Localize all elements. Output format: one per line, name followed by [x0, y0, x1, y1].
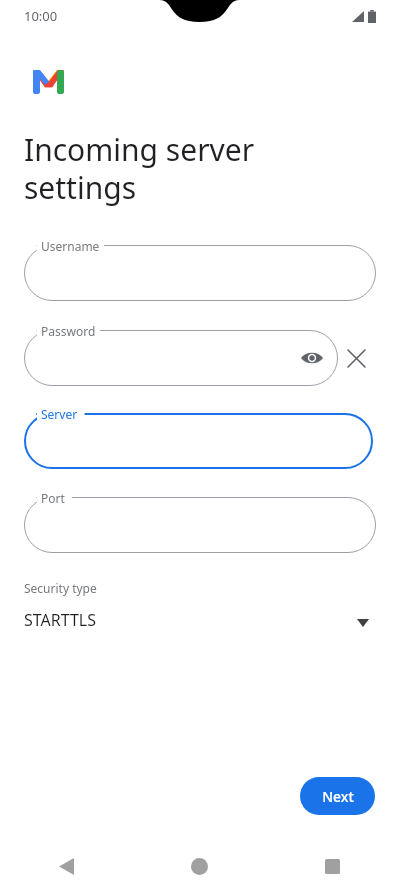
button[interactable]: Back: [0, 840, 133, 893]
staticText: Username: [41, 238, 100, 254]
staticText: Next: [322, 787, 354, 806]
staticText: Incoming server settings: [24, 129, 255, 208]
staticText: 10:00: [24, 7, 58, 25]
button[interactable]: Clear password: [338, 340, 374, 376]
button[interactable]: Home: [133, 840, 266, 893]
staticText: STARTTLS: [24, 609, 97, 631]
button[interactable]: Port: [24, 497, 376, 553]
button[interactable]: Server: [24, 413, 373, 469]
staticText: Security type: [24, 580, 97, 596]
button[interactable]: Security type: [0, 580, 399, 631]
staticText: Password: [41, 323, 96, 339]
button[interactable]: Username: [24, 245, 376, 301]
button[interactable]: Recent apps: [266, 840, 399, 893]
button[interactable]: Password: [24, 330, 338, 386]
staticText: Port: [41, 490, 65, 506]
button[interactable]: Next: [300, 777, 375, 815]
button[interactable]: Show password: [296, 342, 328, 374]
staticText: Server: [41, 406, 78, 422]
